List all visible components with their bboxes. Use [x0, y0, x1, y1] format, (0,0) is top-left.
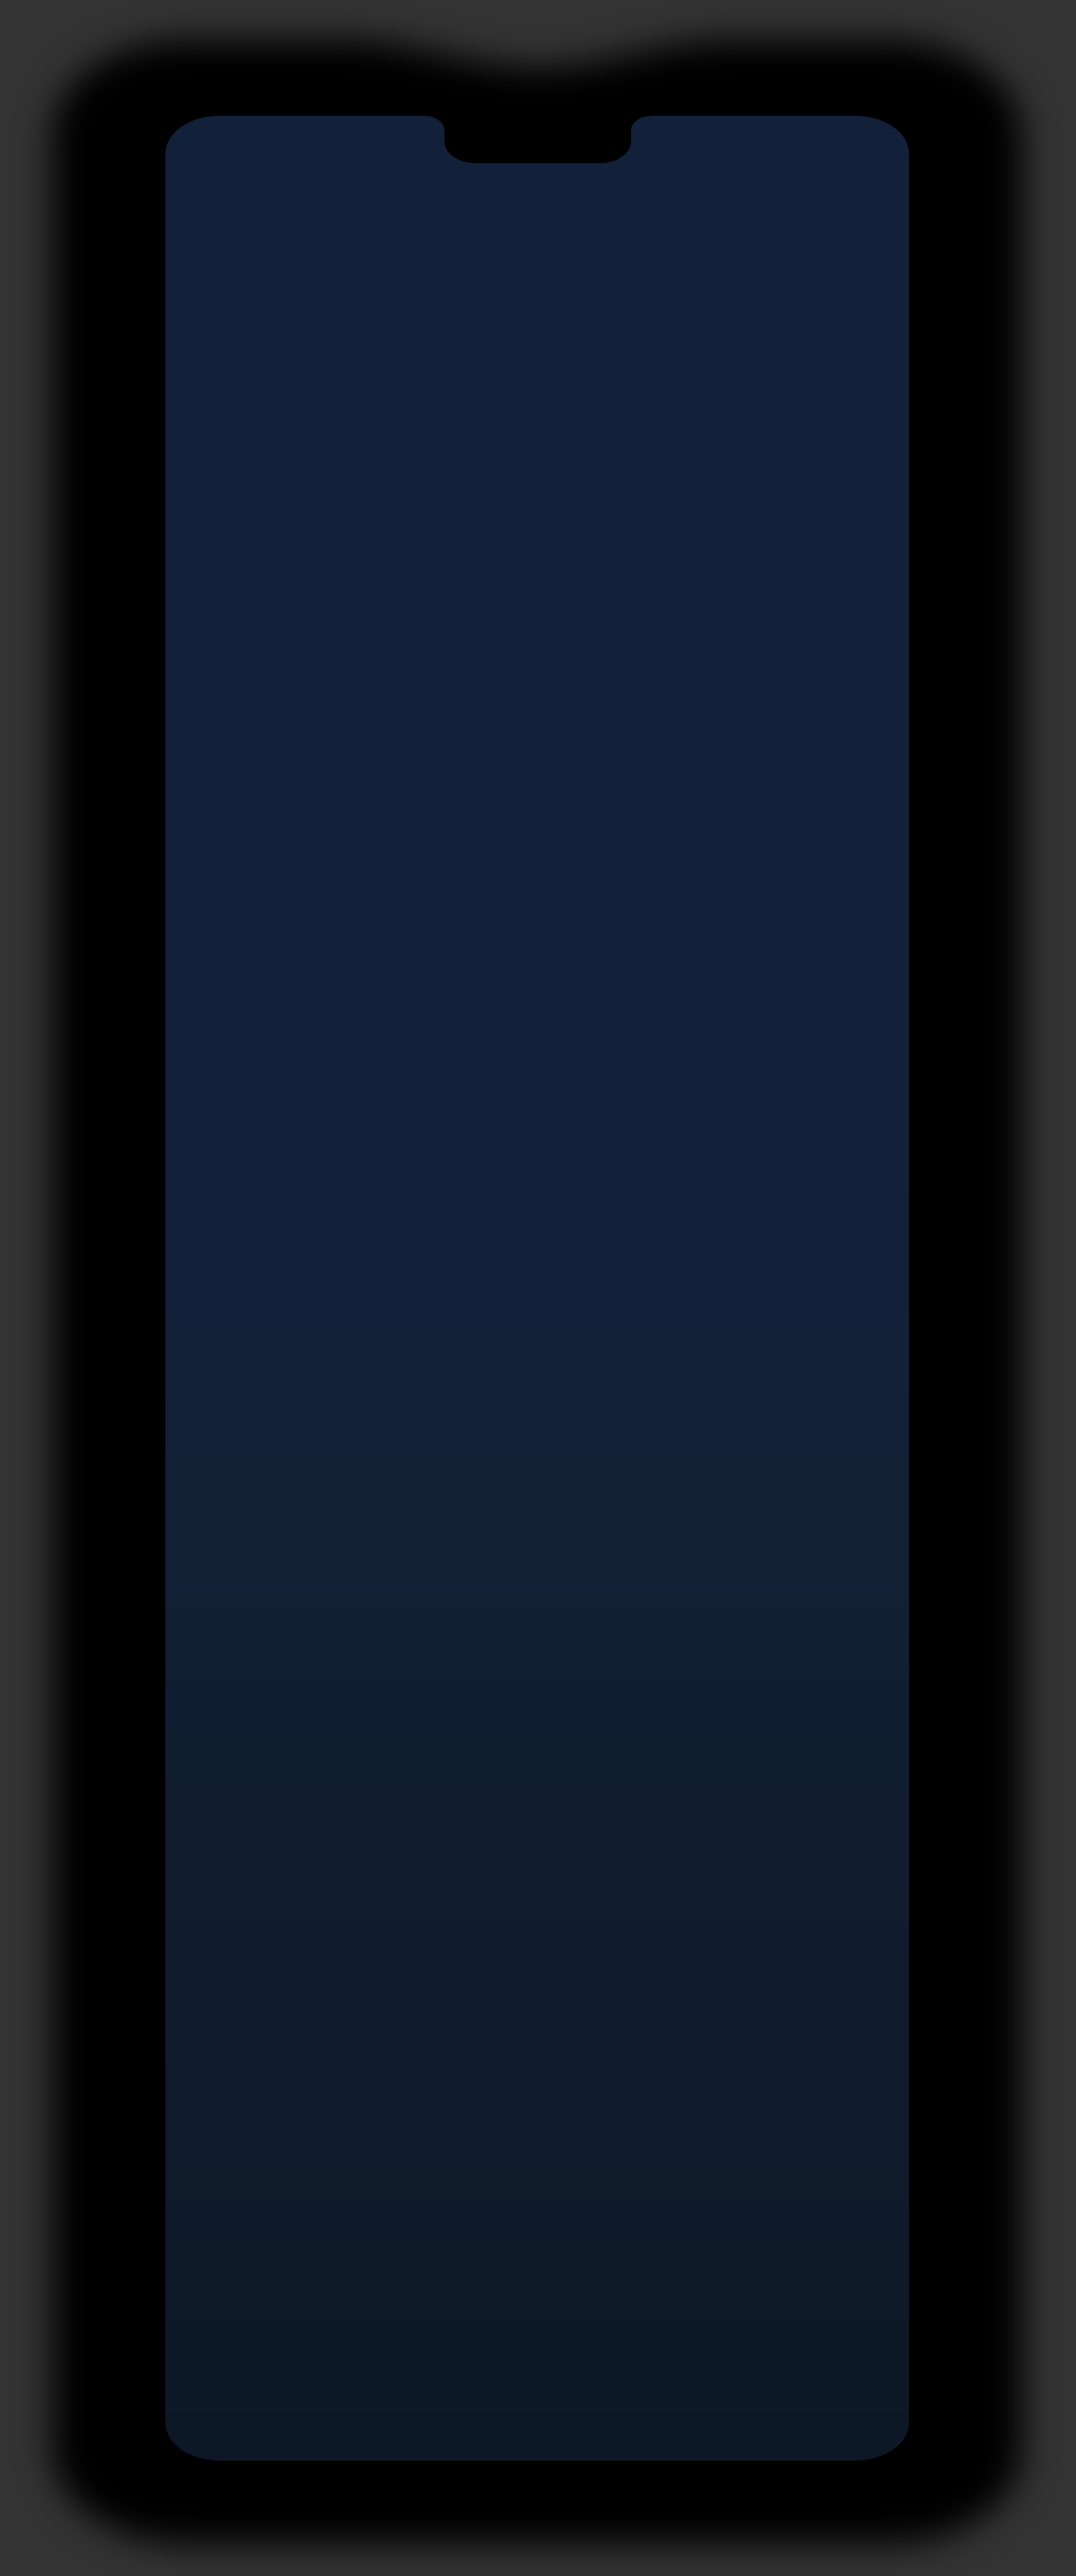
button[interactable]: Phone device mockup	[0, 0, 1076, 2576]
